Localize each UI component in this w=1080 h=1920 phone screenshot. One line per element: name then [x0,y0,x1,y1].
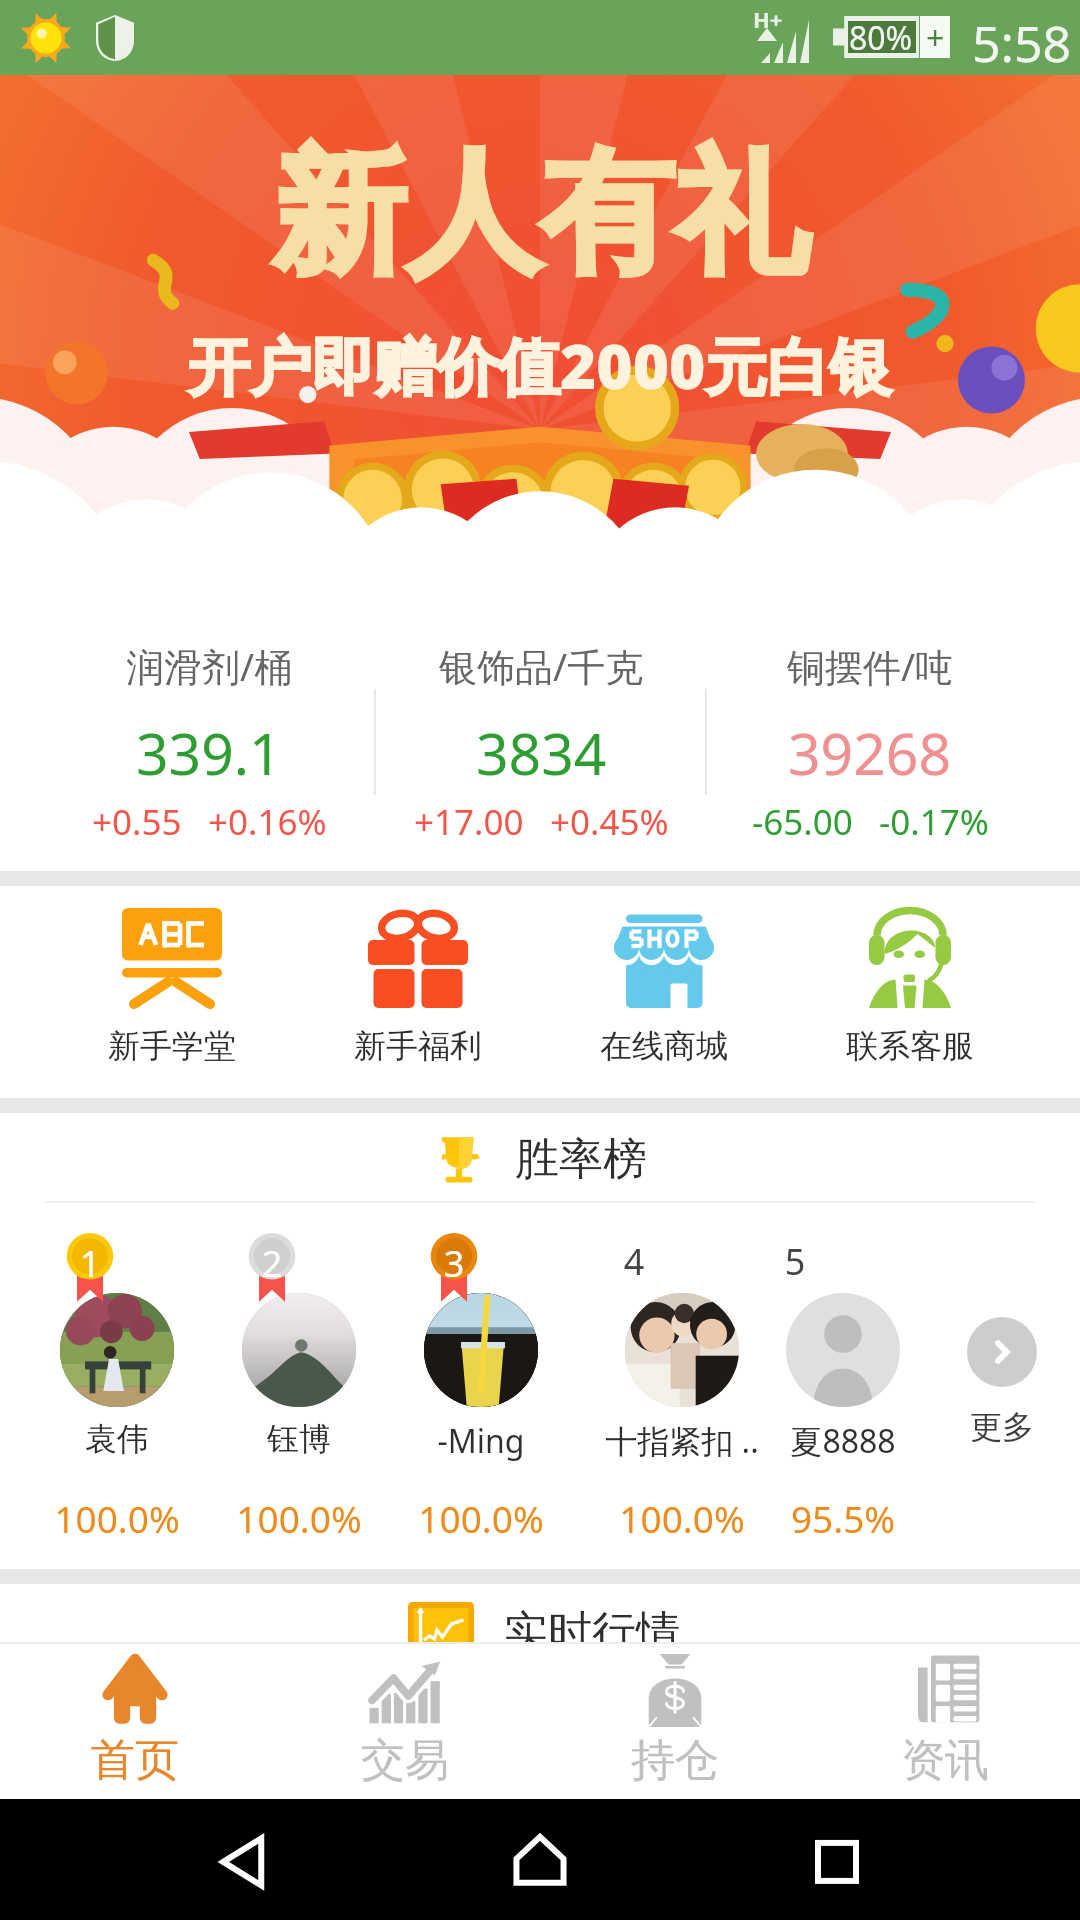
staticText: -Ming [381,1419,581,1463]
staticText: 39268 [788,714,952,792]
button[interactable]: 1 [17,1113,217,1533]
button[interactable]: 资讯 [810,1642,1080,1799]
staticText: 100.0% [381,1493,581,1543]
staticText: 胜率榜 [515,1132,647,1187]
staticText: 袁伟 [17,1419,217,1459]
staticText: 新手福利 [354,1026,482,1066]
staticText: -0.17% [879,798,989,846]
button[interactable]: 联系客服 [795,908,1025,1066]
button[interactable]: 实时行情 [0,1584,1080,1642]
staticText: 80% [849,16,913,58]
staticText: 100.0% [17,1493,217,1543]
button[interactable]: 交易 [270,1642,540,1799]
staticText: +17.00 [414,798,524,846]
staticText: 实时行情 [504,1605,680,1660]
staticText: 5:58 [972,9,1072,77]
staticText: 95.5% [743,1493,943,1543]
staticText: 夏8888 [743,1419,943,1463]
staticText: 新手学堂 [108,1026,236,1066]
staticText: + [926,16,945,58]
button[interactable]: 润滑剂/桶 [44,640,374,846]
button[interactable]: 5 [743,1113,943,1533]
staticText: 钰博 [199,1419,399,1459]
staticText: 联系客服 [846,1026,974,1066]
staticText: 持仓 [631,1733,719,1788]
staticText: 在线商城 [600,1026,728,1066]
button[interactable]: 更多 [922,1113,1080,1513]
staticText: 首页 [91,1733,179,1788]
staticText: 润滑剂/桶 [126,640,293,692]
staticText: H+ [753,4,783,34]
button[interactable]: 铜摆件/吨 [705,640,1035,846]
staticText: 5 [775,1237,815,1286]
staticText: +0.55 [92,798,182,846]
button[interactable]: 银饰品/千克 [376,640,706,846]
staticText: 3834 [476,714,607,792]
button[interactable]: 持仓 [540,1642,810,1799]
staticText: 十指紧扣 .. [582,1419,782,1463]
staticText: 2 [241,1239,303,1288]
staticText: 交易 [361,1733,449,1788]
button[interactable]: 胜率榜 [0,1131,1080,1187]
staticText: 1 [59,1239,121,1288]
staticText: 银饰品/千克 [439,640,644,692]
staticText: 新人有礼 [272,130,808,299]
staticText: 339.1 [136,714,282,792]
staticText: 3 [423,1239,485,1288]
button[interactable]: 首页 [0,1642,270,1799]
button[interactable]: 3 [381,1113,581,1533]
staticText: 开户即赠价值2000元白银 [188,323,892,408]
staticText: 4 [614,1237,654,1286]
staticText: +0.45% [550,798,669,846]
button[interactable]: 新手福利 [303,908,533,1066]
staticText: 更多 [922,1407,1080,1447]
staticText: 100.0% [582,1493,782,1543]
button[interactable]: 4 [582,1113,782,1533]
button[interactable]: 在线商城 [549,908,779,1066]
staticText: 铜摆件/吨 [787,640,954,692]
staticText: 资讯 [901,1733,989,1788]
staticText: 100.0% [199,1493,399,1543]
staticText: -65.00 [752,798,853,846]
button[interactable]: 新手学堂 [57,908,287,1066]
button[interactable]: 2 [199,1113,399,1533]
staticText: +0.16% [208,798,327,846]
